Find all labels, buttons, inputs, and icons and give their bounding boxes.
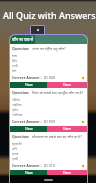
staticText: शनि xyxy=(12,146,18,151)
staticText: अफ्रीका xyxy=(12,102,22,107)
staticText: Question: xyxy=(12,46,30,51)
staticText: Question: xyxy=(12,134,30,139)
staticText: सिंह xyxy=(12,58,17,63)
other: Hint xyxy=(81,76,85,80)
staticText: Share xyxy=(63,127,72,131)
staticText: यूरोप xyxy=(12,107,19,112)
staticText: All Quiz with Answers xyxy=(3,9,96,21)
staticText: विश्व का सबसे बड़ा महाद्वीप कौन सा है? xyxy=(32,90,84,95)
button[interactable]: Show xyxy=(10,82,47,88)
staticText: ID 009 xyxy=(44,119,55,124)
staticText: Share xyxy=(63,83,72,87)
staticText: मंगल xyxy=(12,151,19,156)
staticText: Correct Answer : xyxy=(12,75,42,80)
staticText: पृथ्वी xyxy=(12,156,18,161)
button[interactable]: कौन सा कब से xyxy=(10,35,35,44)
other: Hint xyxy=(81,164,85,168)
button[interactable]: Show xyxy=(10,126,47,132)
staticText: बृहस्पति xyxy=(12,141,22,146)
staticText: Correct Answer : xyxy=(12,163,42,168)
staticText: एशिया xyxy=(12,97,20,102)
staticText: हाथी xyxy=(12,63,18,68)
staticText: Show xyxy=(25,127,33,131)
button[interactable]: Share xyxy=(47,82,87,88)
staticText: Show xyxy=(25,171,33,175)
other: Hint xyxy=(81,120,85,124)
staticText: Correct Answer : xyxy=(12,119,42,124)
staticText: सौरमंडल का सबसे बड़ा ग्रह कौन सा है? xyxy=(32,134,82,139)
staticText: भारत का राष्ट्रीय पशु कौन? xyxy=(32,46,66,51)
staticText: Show xyxy=(25,83,33,87)
button[interactable]: Share xyxy=(47,170,87,176)
button[interactable]: Show xyxy=(10,170,47,176)
button[interactable]: Share xyxy=(47,126,87,132)
staticText: ID 008 xyxy=(44,75,55,80)
staticText: Share xyxy=(63,171,72,175)
staticText: अमेरिका xyxy=(12,112,23,117)
staticText: कौन सा कब से xyxy=(12,37,34,42)
staticText: मोर xyxy=(12,68,17,73)
staticText: Question: xyxy=(12,90,30,95)
staticText: ID 010 xyxy=(44,163,55,168)
staticText: बाघ xyxy=(12,53,17,58)
